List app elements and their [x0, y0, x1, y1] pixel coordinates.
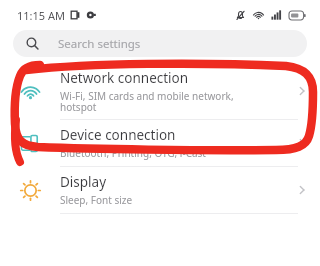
- staticText: Search settings: [58, 36, 141, 52]
- button[interactable]: Search settings: [13, 30, 307, 57]
- staticText: 11:15 AM: [17, 8, 65, 23]
- button[interactable]: Display: [0, 167, 320, 213]
- staticText: Display: [60, 173, 107, 191]
- staticText: Wi-Fi, SIM cards and mobile network, hot…: [60, 89, 234, 114]
- button[interactable]: Device connection: [0, 120, 320, 166]
- staticText: Device connection: [60, 126, 176, 144]
- button[interactable]: Network connection: [0, 63, 320, 119]
- staticText: Network connection: [60, 69, 189, 87]
- staticText: Bluetooth, Printing, OTG, i-Cast: [60, 146, 206, 160]
- staticText: Sleep, Font size: [60, 193, 133, 207]
